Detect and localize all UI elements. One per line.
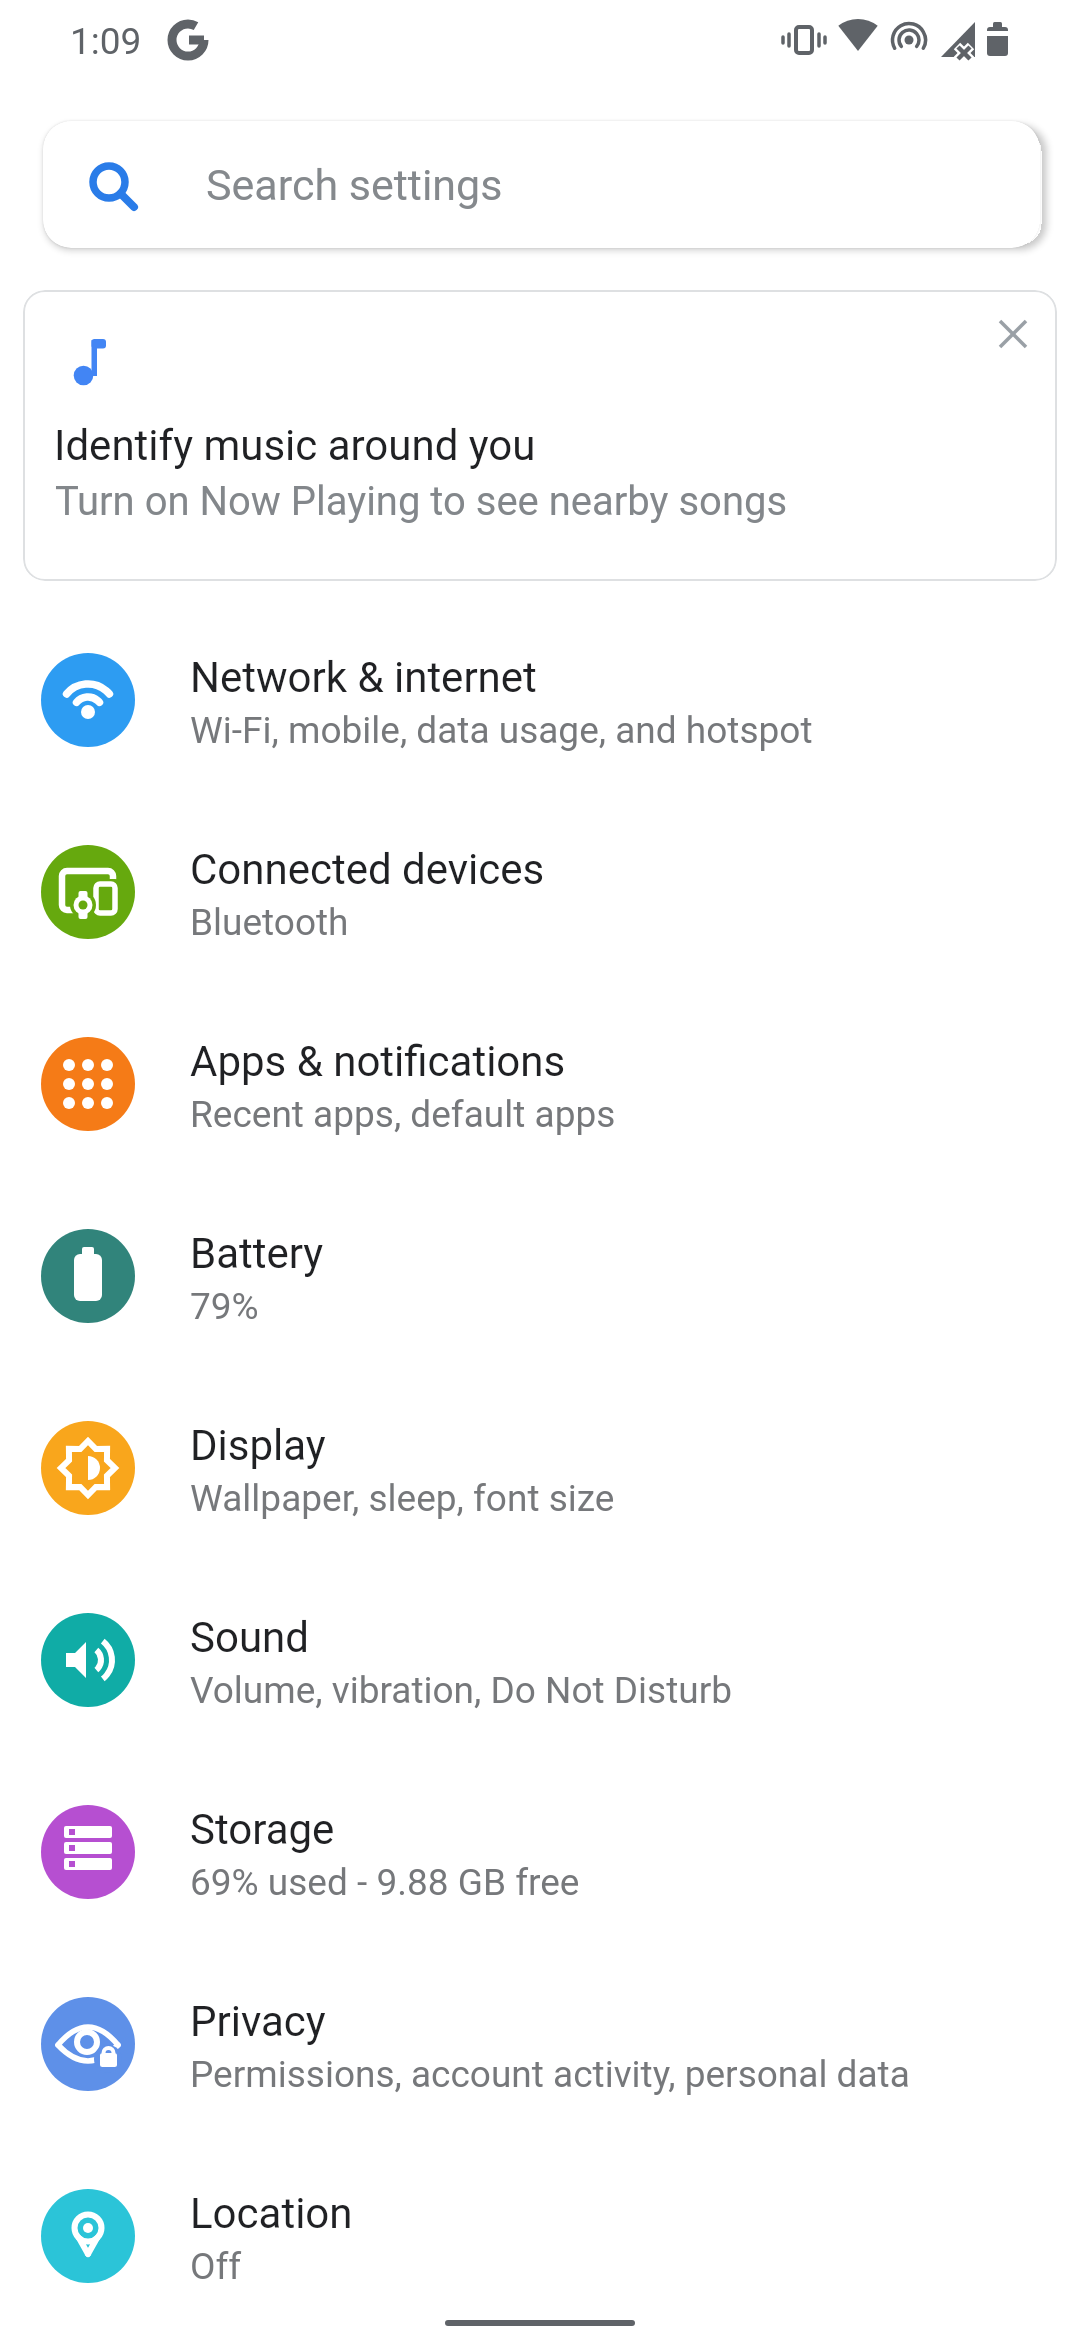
button[interactable]: Battery <box>0 1180 1080 1372</box>
staticText: Turn on Now Playing to see nearby songs <box>55 478 788 525</box>
button[interactable]: Privacy <box>0 1948 1080 2140</box>
button[interactable]: Display <box>0 1372 1080 1564</box>
button[interactable]: Search settings <box>43 121 1040 248</box>
staticText: Apps & notifications <box>190 1037 566 1086</box>
button[interactable]: Sound <box>0 1564 1080 1756</box>
staticText: Privacy <box>190 1997 326 2046</box>
staticText: 1:09 <box>70 20 142 63</box>
button[interactable]: Storage <box>0 1756 1080 1948</box>
staticText: Location <box>190 2189 353 2238</box>
button[interactable]: Apps & notifications <box>0 988 1080 1180</box>
staticText: Off <box>190 2245 242 2288</box>
staticText: Connected devices <box>190 845 545 894</box>
staticText: Recent apps, default apps <box>190 1093 616 1136</box>
staticText: Sound <box>190 1613 309 1662</box>
button[interactable] <box>983 304 1043 364</box>
button[interactable]: Connected devices <box>0 796 1080 988</box>
staticText: Bluetooth <box>190 901 349 944</box>
staticText: Volume, vibration, Do Not Disturb <box>190 1669 733 1712</box>
staticText: Identify music around you <box>54 421 536 470</box>
staticText: Network & internet <box>190 653 537 702</box>
staticText: Search settings <box>206 160 503 210</box>
staticText: Battery <box>190 1229 324 1278</box>
staticText: 69% used - 9.88 GB free <box>190 1861 580 1904</box>
staticText: Wallpaper, sleep, font size <box>190 1477 615 1520</box>
staticText: Wi-Fi, mobile, data usage, and hotspot <box>190 709 813 752</box>
staticText: Storage <box>190 1805 335 1854</box>
staticText: Display <box>190 1421 326 1470</box>
staticText: 79% <box>190 1285 259 1328</box>
button[interactable]: Location <box>0 2140 1080 2332</box>
button[interactable]: Identify music around you <box>23 290 1057 581</box>
staticText: Permissions, account activity, personal … <box>190 2053 910 2096</box>
button[interactable]: Network & internet <box>0 604 1080 796</box>
